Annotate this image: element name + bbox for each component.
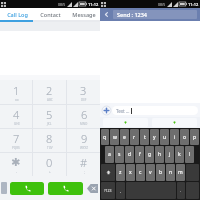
button[interactable]: Call SIM 1 (10, 182, 44, 195)
button[interactable]: Contact (34, 8, 67, 20)
button[interactable]: p (190, 129, 199, 145)
button[interactable]: t (140, 129, 149, 145)
staticText: Contact (40, 11, 61, 18)
button[interactable]: 0 (33, 153, 66, 176)
staticText: 11:12 (88, 2, 99, 7)
staticText: y (153, 134, 156, 141)
button[interactable]: Shift (101, 164, 115, 181)
button[interactable]: # (67, 153, 100, 176)
button[interactable]: f (135, 146, 144, 163)
button[interactable]: g (145, 146, 154, 163)
staticText: 08/5 (58, 2, 66, 7)
staticText: Call Log (7, 11, 28, 18)
button[interactable]: Message (67, 8, 100, 20)
button[interactable]: , (116, 182, 125, 199)
staticText: oo (15, 98, 19, 102)
staticText: w (113, 134, 117, 141)
button[interactable]: Add attachment (100, 104, 112, 116)
staticText: 6 (81, 107, 88, 122)
staticText: , (120, 188, 122, 193)
button[interactable]: n (166, 164, 175, 181)
button[interactable]: u (160, 129, 169, 145)
button[interactable]: e (120, 129, 129, 145)
button[interactable]: l (185, 146, 194, 163)
button[interactable]: Suggestion (103, 118, 148, 127)
button[interactable]: Back (100, 8, 112, 21)
staticText: j (169, 151, 171, 158)
button[interactable]: y (150, 129, 159, 145)
staticText: 08/5 (158, 2, 166, 7)
button[interactable]: q (101, 129, 109, 145)
button[interactable]: 7 (0, 129, 32, 152)
button[interactable]: r (130, 129, 139, 145)
button[interactable]: a (105, 146, 114, 163)
staticText: , (16, 169, 17, 173)
button[interactable]: s (115, 146, 124, 163)
button[interactable]: 9 (67, 129, 100, 152)
button[interactable]: ?123 (101, 182, 115, 199)
staticText: ✱ (11, 156, 21, 169)
staticText: Send : 1234 (117, 11, 147, 18)
staticText: v (149, 169, 152, 176)
button[interactable]: Call Log (0, 8, 34, 20)
staticText: 2 (46, 83, 53, 98)
button[interactable]: i (170, 129, 179, 145)
staticText: 8 (46, 131, 53, 146)
staticText: . (180, 188, 182, 193)
button[interactable]: m (176, 164, 185, 181)
button[interactable]: Send : 1234 (113, 10, 197, 19)
button[interactable]: Suggestion (152, 118, 197, 127)
button[interactable]: c (136, 164, 145, 181)
staticText: a (108, 151, 111, 158)
staticText: Text ... (116, 108, 130, 114)
button[interactable]: 8 (33, 129, 66, 152)
button[interactable]: k (175, 146, 184, 163)
staticText: GHI (14, 122, 20, 126)
button[interactable]: d (125, 146, 134, 163)
button[interactable]: o (180, 129, 189, 145)
staticText: 4 (13, 107, 20, 122)
button[interactable]: Text ... (112, 106, 198, 115)
staticText: Message (72, 11, 96, 18)
staticText: ?123 (104, 188, 112, 193)
button[interactable]: b (156, 164, 165, 181)
button[interactable]: 2 (33, 80, 66, 104)
button[interactable]: j (165, 146, 174, 163)
staticText: n (169, 169, 173, 176)
staticText: i (174, 134, 176, 141)
staticText: c (139, 169, 142, 176)
staticText: s (118, 151, 121, 158)
staticText: f (139, 151, 141, 158)
staticText: d (128, 151, 132, 158)
button[interactable]: 3 (67, 80, 100, 104)
staticText: r (133, 134, 136, 141)
staticText: p (193, 134, 197, 141)
staticText: 3 (80, 83, 87, 98)
staticText: 11:12 (188, 2, 199, 7)
button[interactable]: 6 (67, 105, 100, 128)
staticText: o (183, 134, 187, 141)
staticText: ; (84, 170, 85, 174)
staticText: # (80, 155, 88, 170)
staticText: 9 (81, 131, 88, 146)
staticText: m (178, 169, 183, 176)
button[interactable]: Call SIM 2 (48, 182, 83, 195)
staticText: DEF (81, 98, 87, 102)
button[interactable]: 1 (0, 80, 32, 104)
button[interactable]: v (146, 164, 155, 181)
button[interactable]: SIM (1, 182, 7, 194)
button[interactable]: x (126, 164, 135, 181)
button[interactable]: w (110, 129, 119, 145)
button[interactable]: 4 (0, 105, 32, 128)
button[interactable]: z (116, 164, 125, 181)
button[interactable]: h (155, 146, 164, 163)
button[interactable]: ✱ (0, 153, 32, 176)
button[interactable]: 5 (33, 105, 66, 128)
staticText: z (119, 169, 122, 176)
button[interactable]: . (177, 182, 185, 199)
button[interactable]: Delete (87, 184, 98, 193)
staticText: h (158, 151, 162, 158)
